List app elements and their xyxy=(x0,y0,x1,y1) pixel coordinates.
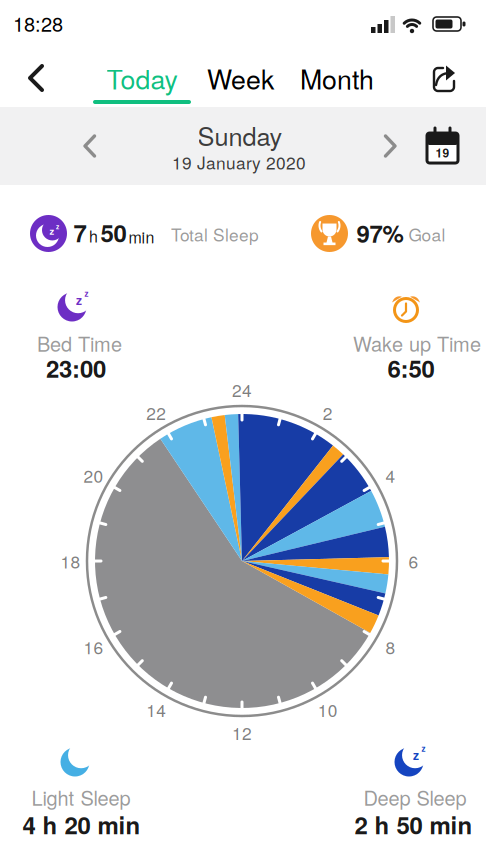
staticText: z xyxy=(49,224,54,237)
staticText: z xyxy=(421,743,425,754)
staticText: Sunday xyxy=(197,117,282,153)
staticText: 18 xyxy=(60,549,80,573)
button[interactable]: Week xyxy=(207,59,274,97)
button[interactable]: Month xyxy=(300,59,374,97)
button[interactable]: Back xyxy=(26,63,46,93)
staticText: z xyxy=(413,747,419,763)
staticText: 20 xyxy=(83,463,103,487)
staticText: Today xyxy=(106,59,177,97)
staticText: 19 January 2020 xyxy=(172,150,306,174)
staticText: Bed Time xyxy=(37,329,122,357)
staticText: 24 xyxy=(232,377,252,402)
staticText: 23:00 xyxy=(46,351,106,385)
staticText: 19 xyxy=(435,144,449,161)
staticText: 2 h 50 min xyxy=(354,808,472,841)
staticText: min xyxy=(128,225,154,248)
staticText: Deep Sleep xyxy=(363,783,466,811)
staticText: 8 xyxy=(385,635,395,659)
button[interactable]: Choose date xyxy=(423,125,461,167)
staticText: 97% xyxy=(356,216,403,250)
staticText: 10 xyxy=(318,697,338,722)
staticText: Total Sleep xyxy=(171,222,259,246)
staticText: z xyxy=(76,292,82,308)
staticText: Month xyxy=(300,59,374,97)
staticText: 6 xyxy=(408,549,418,573)
staticText: 7 xyxy=(73,216,86,249)
staticText: 14 xyxy=(146,697,166,722)
button[interactable]: Previous day xyxy=(82,132,98,160)
staticText: 12 xyxy=(232,720,252,745)
staticText: h xyxy=(89,224,98,247)
staticText: 6:50 xyxy=(387,351,434,385)
staticText: z xyxy=(56,222,59,231)
staticText: Goal xyxy=(408,222,445,246)
button[interactable]: Next day xyxy=(382,132,398,160)
staticText: Week xyxy=(207,59,274,97)
staticText: Wake up Time xyxy=(353,329,481,357)
button[interactable]: Today xyxy=(87,55,197,111)
staticText: 4 xyxy=(385,463,395,487)
staticText: 16 xyxy=(83,635,103,659)
staticText: 4 h 20 min xyxy=(22,808,140,841)
staticText: z xyxy=(84,288,88,299)
staticText: 50 xyxy=(100,216,126,249)
staticText: 22 xyxy=(146,400,166,425)
staticText: 2 xyxy=(323,400,333,425)
button[interactable]: Share xyxy=(431,63,457,93)
staticText: 18:28 xyxy=(13,9,63,37)
staticText: Light Sleep xyxy=(31,783,130,811)
